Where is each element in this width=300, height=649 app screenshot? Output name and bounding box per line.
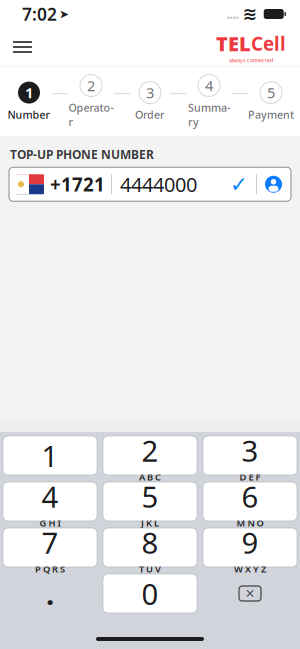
staticText: ....	[226, 6, 238, 22]
staticText: D E F	[239, 471, 260, 483]
button[interactable]: 1	[3, 436, 97, 475]
button[interactable]: TelCell home	[216, 22, 300, 72]
button[interactable]: Delete	[203, 574, 297, 613]
button[interactable]: 5	[103, 482, 197, 521]
staticText: J K L	[141, 517, 159, 529]
button[interactable]: 3	[203, 436, 297, 475]
staticText: Number	[7, 108, 50, 122]
staticText: 4	[41, 477, 58, 516]
staticText: 6	[241, 477, 258, 516]
staticText: M N O	[236, 517, 263, 529]
staticText: 9	[241, 523, 258, 562]
staticText: A B C	[139, 471, 161, 483]
staticText: 4444000	[120, 171, 197, 198]
button[interactable]: 4	[3, 482, 97, 521]
button[interactable]: 0	[103, 574, 197, 613]
staticText: 3	[146, 83, 154, 102]
staticText: 5	[141, 477, 158, 516]
staticText: Operator	[68, 100, 113, 129]
staticText: ➤	[59, 7, 69, 21]
staticText: 1	[41, 436, 58, 475]
staticText: G H I	[39, 517, 60, 529]
button[interactable]: +1721	[9, 167, 291, 201]
staticText: 2	[87, 76, 95, 95]
staticText: Summary	[188, 100, 230, 129]
staticText: P Q R S	[35, 563, 65, 575]
staticText: 5	[267, 83, 275, 102]
staticText: W X Y Z	[234, 563, 266, 575]
staticText: always connected	[229, 57, 273, 64]
staticText: Cell	[251, 31, 286, 56]
staticText: ≋	[242, 4, 257, 24]
staticText: .	[46, 574, 54, 613]
button[interactable]: 2	[103, 436, 197, 475]
button[interactable]: 9	[203, 528, 297, 567]
staticText: ✕	[245, 587, 255, 600]
staticText: 2	[141, 431, 158, 470]
staticText: Payment	[248, 108, 294, 122]
staticText: ✓	[230, 172, 248, 196]
button[interactable]: 6	[203, 482, 297, 521]
button[interactable]: 8	[103, 528, 197, 567]
staticText: TEL	[216, 30, 251, 57]
staticText: 7	[41, 523, 58, 562]
staticText: Order	[135, 108, 165, 122]
button[interactable]: 7	[3, 528, 97, 567]
staticText: T U V	[139, 563, 161, 575]
staticText: 4	[205, 76, 213, 95]
staticText: 8	[141, 523, 158, 562]
button[interactable]: Period	[3, 574, 97, 613]
staticText: TOP-UP PHONE NUMBER	[10, 146, 154, 162]
staticText: 7:02	[22, 2, 57, 25]
staticText: 1	[25, 83, 33, 102]
button[interactable]: Menu	[0, 31, 45, 63]
staticText: 3	[241, 431, 258, 470]
staticText: 0	[141, 574, 158, 613]
staticText: +1721	[50, 172, 105, 197]
